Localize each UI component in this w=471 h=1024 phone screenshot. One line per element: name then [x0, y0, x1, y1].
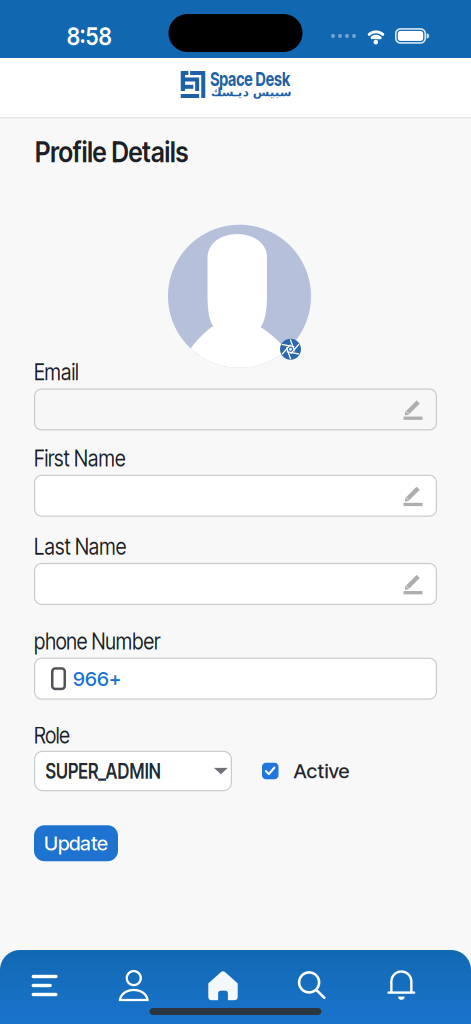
button[interactable]: Update: [34, 825, 118, 861]
button[interactable]: Role: SUPER_ADMIN: [34, 751, 232, 791]
button[interactable]: Change profile photo: [280, 339, 301, 360]
staticText: سبيس ديـسك: [210, 85, 291, 99]
staticText: Role: [34, 722, 75, 749]
staticText: SUPER_ADMIN: [45, 758, 189, 784]
staticText: 966+: [73, 667, 121, 690]
button[interactable]: Menu: [0, 974, 89, 996]
staticText: Update: [44, 831, 108, 855]
button[interactable]: Phone number: [34, 658, 437, 700]
button[interactable]: Active: [262, 759, 349, 783]
button[interactable]: Search: [268, 972, 357, 999]
button[interactable]: First Name: [34, 475, 437, 517]
button[interactable]: Profile: [89, 970, 178, 1001]
staticText: First Name: [34, 445, 139, 472]
staticText: Last Name: [34, 533, 140, 560]
staticText: Profile Details: [35, 135, 205, 168]
button[interactable]: Last Name: [34, 563, 437, 605]
staticText: Email: [34, 359, 85, 385]
staticText: 8:58: [63, 21, 115, 51]
staticText: Space Desk: [210, 67, 318, 91]
button[interactable]: Email: [34, 388, 437, 430]
staticText: Active: [293, 759, 349, 783]
button[interactable]: Notifications: [357, 970, 446, 1001]
staticText: phone Number: [34, 628, 179, 655]
button[interactable]: Home: [178, 970, 268, 1001]
